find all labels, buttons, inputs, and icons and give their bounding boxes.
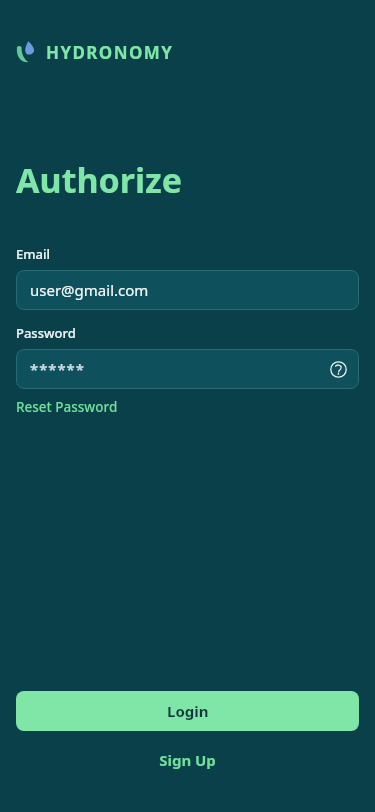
- button[interactable]: Sign Up: [147, 748, 228, 772]
- staticText: Sign Up: [159, 750, 216, 770]
- button[interactable]: Password help: [325, 356, 351, 382]
- staticText: ******: [30, 359, 85, 379]
- staticText: user@gmail.com: [30, 280, 149, 300]
- staticText: HYDRONOMY: [46, 41, 174, 64]
- button[interactable]: ******: [16, 349, 359, 389]
- button[interactable]: user@gmail.com: [16, 270, 359, 310]
- button[interactable]: Reset Password: [16, 398, 118, 416]
- button[interactable]: Login: [16, 691, 359, 731]
- staticText: Reset Password: [16, 398, 118, 416]
- staticText: Password: [16, 324, 76, 342]
- button[interactable]: HYDRONOMY: [16, 40, 375, 64]
- staticText: Authorize: [16, 157, 183, 203]
- staticText: Login: [167, 701, 209, 721]
- staticText: Email: [16, 245, 51, 263]
